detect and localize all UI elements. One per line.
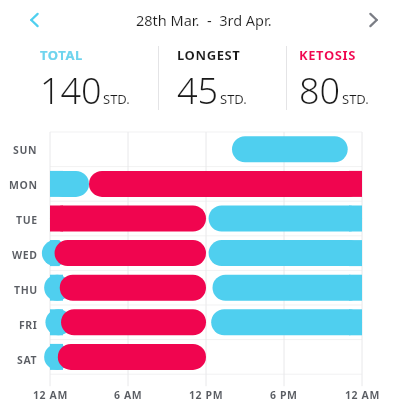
staticText: LONGEST bbox=[177, 46, 241, 64]
staticText: STD. bbox=[103, 90, 130, 108]
staticText: 12 AM bbox=[345, 388, 380, 402]
staticText: 6 PM bbox=[270, 388, 298, 402]
staticText: FRI bbox=[19, 318, 38, 332]
staticText: 80 bbox=[299, 66, 341, 112]
staticText: MON bbox=[9, 178, 38, 192]
button[interactable]: 28th Mar. - 3rd Apr. bbox=[70, 0, 338, 40]
staticText: 12 AM bbox=[33, 388, 68, 402]
staticText: KETOSIS bbox=[299, 46, 357, 64]
button[interactable]: TOTAL bbox=[0, 46, 158, 112]
staticText: TOTAL bbox=[40, 46, 83, 64]
staticText: STD. bbox=[342, 90, 369, 108]
staticText: SUN bbox=[13, 143, 38, 157]
staticText: TUE bbox=[16, 213, 38, 227]
staticText: 12 PM bbox=[189, 388, 224, 402]
button[interactable]: Previous week bbox=[0, 0, 70, 40]
staticText: WED bbox=[12, 248, 38, 262]
staticText: SAT bbox=[17, 353, 38, 367]
staticText: THU bbox=[14, 283, 38, 297]
button[interactable]: KETOSIS bbox=[287, 46, 408, 112]
staticText: 28th Mar. - 3rd Apr. bbox=[136, 10, 272, 30]
staticText: 45 bbox=[177, 66, 219, 112]
staticText: STD. bbox=[220, 90, 247, 108]
staticText: 140 bbox=[40, 66, 102, 112]
button[interactable]: LONGEST bbox=[159, 46, 286, 112]
button[interactable]: Next week bbox=[338, 0, 408, 40]
staticText: 6 AM bbox=[114, 388, 143, 402]
